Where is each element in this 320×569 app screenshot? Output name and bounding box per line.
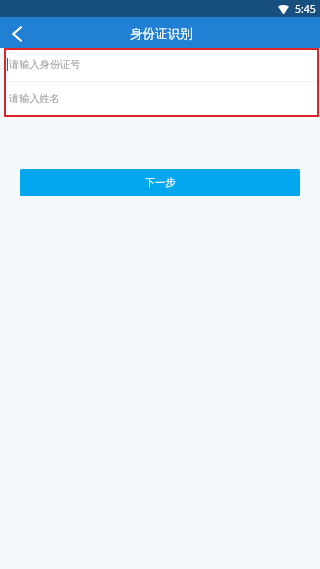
button[interactable]: 下一步 xyxy=(20,169,300,196)
staticText: 请输入身份证号 xyxy=(9,58,81,71)
button[interactable]: 请输入姓名 xyxy=(4,82,319,117)
staticText: 身份证识别 xyxy=(130,26,193,42)
button[interactable]: Back xyxy=(0,17,34,48)
button[interactable]: 请输入身份证号 xyxy=(4,48,319,81)
staticText: 请输入姓名 xyxy=(9,92,60,105)
staticText: 下一步 xyxy=(145,176,176,189)
staticText: 5:45 xyxy=(295,2,316,16)
